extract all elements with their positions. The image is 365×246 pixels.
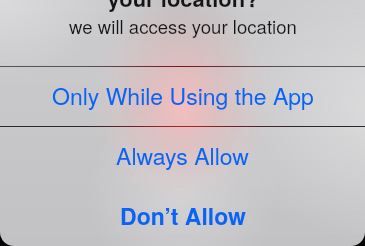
staticText: Always Allow	[116, 139, 249, 172]
button[interactable]: Always Allow	[0, 127, 365, 183]
button[interactable]: Don’t Allow	[0, 183, 365, 246]
button[interactable]: Only While Using the App	[0, 67, 365, 126]
staticText: Don’t Allow	[120, 199, 246, 232]
staticText: your location?	[107, 0, 259, 14]
staticText: Only While Using the App	[52, 79, 314, 112]
staticText: we will access your location	[69, 13, 297, 40]
